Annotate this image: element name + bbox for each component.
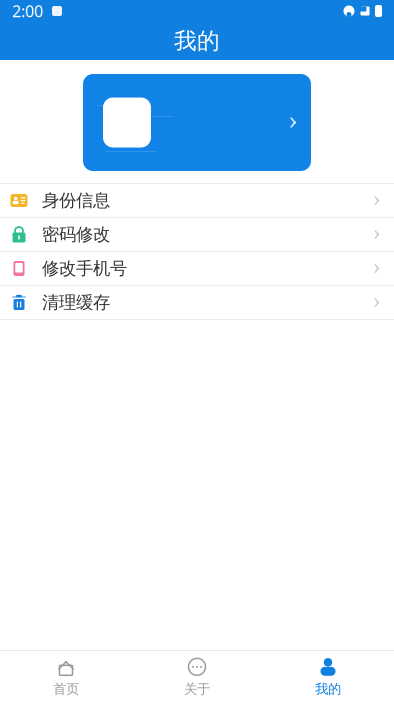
button[interactable]: 密码修改 bbox=[0, 218, 394, 251]
staticText: 首页 bbox=[53, 681, 79, 697]
staticText: 我的 bbox=[174, 27, 220, 55]
button[interactable]: 我的 bbox=[262, 651, 393, 702]
staticText: 密码修改 bbox=[42, 224, 110, 245]
button[interactable]: 清理缓存 bbox=[0, 286, 394, 319]
button[interactable]: 个人资料 bbox=[83, 74, 311, 171]
button[interactable]: 关于 bbox=[131, 651, 262, 702]
staticText: 清理缓存 bbox=[42, 292, 110, 313]
staticText: 关于 bbox=[184, 681, 210, 697]
staticText: 我的 bbox=[315, 681, 341, 697]
button[interactable]: 首页 bbox=[0, 651, 131, 702]
button[interactable]: 修改手机号 bbox=[0, 252, 394, 285]
button[interactable]: 身份信息 bbox=[0, 184, 394, 217]
staticText: 2:00 bbox=[12, 0, 43, 22]
staticText: 修改手机号 bbox=[42, 258, 127, 279]
staticText: 身份信息 bbox=[42, 190, 110, 211]
